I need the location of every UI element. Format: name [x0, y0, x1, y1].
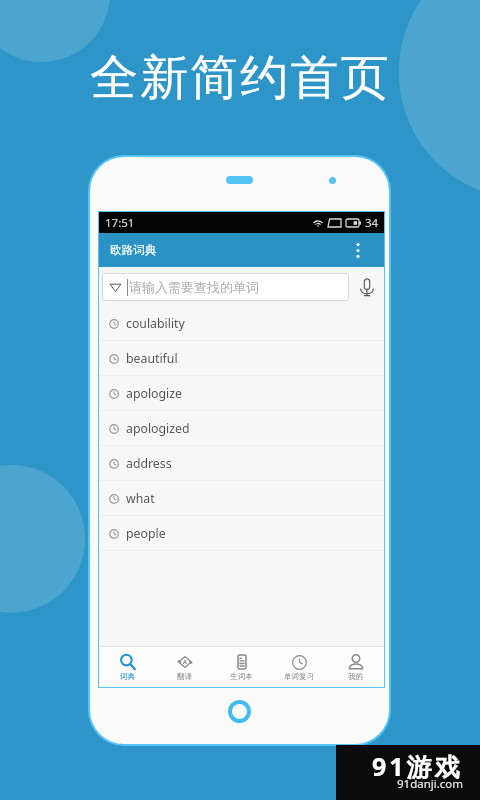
staticText: 91游戏 — [372, 749, 463, 783]
staticText: 词典 — [120, 672, 135, 681]
staticText: coulability — [126, 315, 185, 332]
staticText: 全新简约首页 — [90, 48, 391, 108]
staticText: 请输入需要查找的单词 — [129, 279, 259, 295]
staticText: 生词本 — [230, 672, 253, 681]
staticText: 17:51 — [105, 215, 135, 231]
button[interactable]: coulability — [99, 306, 384, 341]
staticText: apologized — [126, 420, 190, 437]
staticText: beautiful — [126, 350, 178, 367]
button[interactable]: people — [99, 516, 384, 551]
button[interactable]: 请输入需要查找的单词 — [102, 273, 349, 301]
staticText: 翻译 — [177, 672, 192, 681]
staticText: 我的 — [348, 672, 363, 681]
button[interactable]: 翻译 — [156, 647, 213, 687]
button[interactable]: 词典 — [99, 647, 156, 687]
button[interactable]: More options — [348, 240, 368, 260]
button[interactable]: beautiful — [99, 341, 384, 376]
button[interactable]: 单词复习 — [270, 647, 327, 687]
staticText: apologize — [126, 385, 182, 402]
button[interactable]: apologize — [99, 376, 384, 411]
button[interactable]: address — [99, 446, 384, 481]
staticText: people — [126, 525, 166, 542]
button[interactable]: apologized — [99, 411, 384, 446]
staticText: 单词复习 — [284, 672, 314, 681]
button[interactable]: Voice search — [349, 270, 384, 304]
staticText: address — [126, 455, 172, 472]
staticText: 34 — [365, 215, 379, 231]
button[interactable]: 生词本 — [213, 647, 270, 687]
staticText: 91danji.com — [397, 776, 464, 792]
staticText: 欧路词典 — [110, 243, 156, 257]
staticText: what — [126, 490, 155, 507]
button[interactable]: 我的 — [327, 647, 384, 687]
button[interactable]: what — [99, 481, 384, 516]
